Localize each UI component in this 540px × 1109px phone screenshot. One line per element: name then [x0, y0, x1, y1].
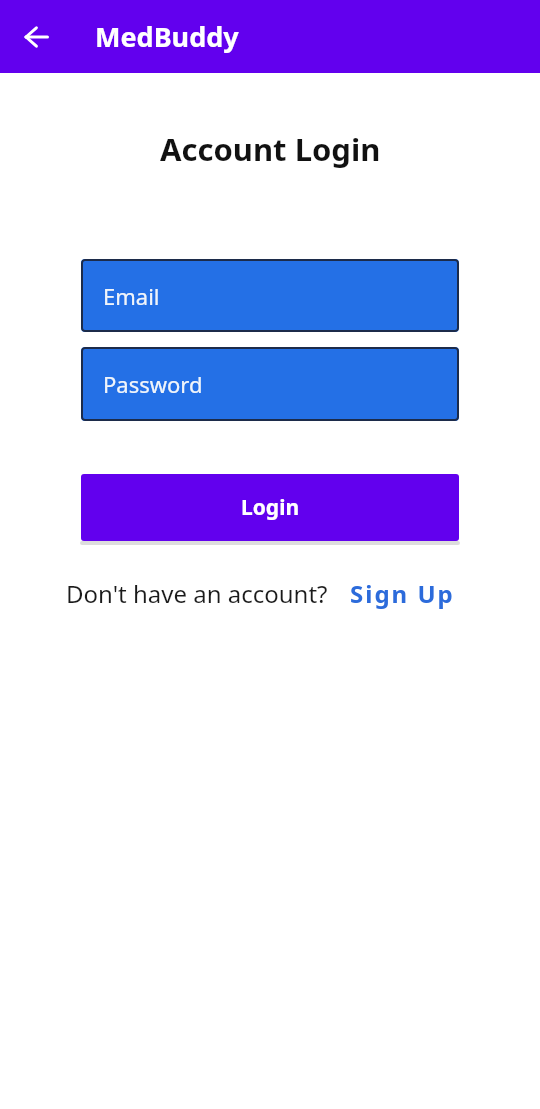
staticText: Login [241, 493, 300, 522]
staticText: Account Login [160, 128, 381, 170]
button[interactable] [10, 9, 66, 65]
staticText: Don't have an account? [66, 577, 328, 610]
staticText: Password [103, 369, 203, 399]
button[interactable]: Email [81, 259, 459, 332]
staticText: MedBuddy [95, 18, 239, 55]
button[interactable]: Sign Up [350, 577, 455, 610]
button[interactable]: Login [81, 474, 459, 541]
staticText: Email [103, 281, 160, 311]
button[interactable]: Password [81, 347, 459, 421]
staticText: Sign Up [350, 577, 455, 610]
